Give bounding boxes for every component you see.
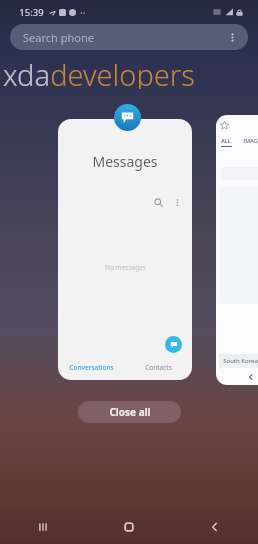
button[interactable]: Search xyxy=(151,195,165,209)
button[interactable]: Back xyxy=(172,510,258,544)
staticText: developers xyxy=(50,55,195,89)
staticText: IMAGES xyxy=(243,137,258,144)
button[interactable]: Recents xyxy=(0,510,86,544)
button[interactable]: More options xyxy=(170,195,184,209)
button[interactable]: Start new conversation xyxy=(165,336,182,353)
staticText: South Korea xyxy=(223,357,258,365)
staticText: Close all xyxy=(109,405,151,419)
button[interactable]: Contacts xyxy=(125,359,192,375)
staticText: Messages xyxy=(92,152,158,171)
staticText: ALL xyxy=(221,137,231,144)
button[interactable]: Messages xyxy=(58,119,192,380)
staticText: Contacts xyxy=(145,363,172,372)
staticText: Conversations xyxy=(69,363,114,372)
staticText: xda xyxy=(3,55,50,89)
staticText: 15:39 xyxy=(19,6,44,19)
button[interactable]: Search phone xyxy=(10,24,248,50)
button[interactable]: Close all xyxy=(78,401,181,423)
button[interactable]: ALL xyxy=(216,115,258,385)
button[interactable]: Messages xyxy=(114,104,141,131)
staticText: Search phone xyxy=(23,30,94,45)
button[interactable]: More options xyxy=(224,29,240,45)
button[interactable]: Home xyxy=(86,510,172,544)
button[interactable]: Conversations xyxy=(58,359,125,375)
staticText: No messages xyxy=(105,263,146,272)
